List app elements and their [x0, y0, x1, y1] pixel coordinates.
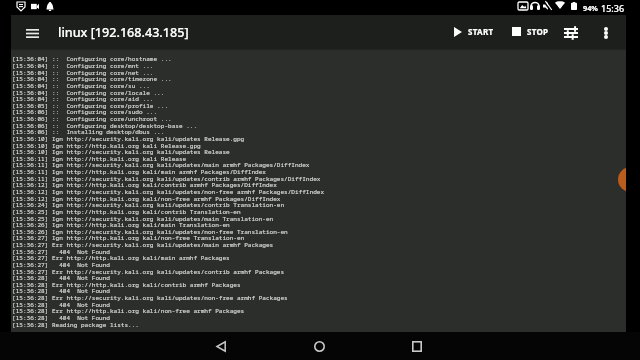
staticText: [15:36:11] Ign http://security.kali.org … [12, 175, 321, 183]
button[interactable]: Back [207, 332, 235, 360]
staticText: [15:36:28] 404 Not Found [12, 274, 110, 282]
staticText: [15:36:26] Ign http://security.kali.org … [12, 228, 288, 236]
staticText: [15:36:11] Ign http://http.kali.org kali… [12, 168, 266, 176]
staticText: [15:36:06] :: Configuring desktop/deskto… [12, 122, 198, 130]
staticText: [15:36:27] Err http://security.kali.org … [12, 268, 285, 276]
button[interactable]: Settings [557, 15, 585, 48]
staticText: [15:36:12] Ign http://http.kali.org kali… [12, 195, 281, 203]
staticText: [15:36:28] 404 Not Found [12, 314, 110, 322]
staticText: [15:36:25] Ign http://security.kali.org … [12, 215, 274, 223]
staticText: [15:36:27] Ign http://http.kali.org kali… [12, 234, 245, 242]
button[interactable]: Show keyboard [618, 167, 640, 192]
staticText: START [468, 26, 494, 37]
staticText: STOP [527, 26, 549, 37]
staticText: [15:36:12] Ign http://http.kali.org kali… [12, 181, 277, 189]
button[interactable]: Menu [18, 15, 47, 48]
staticText: [15:36:04] :: Configuring core/timezone … [12, 75, 172, 83]
staticText: linux [192.168.43.185] [58, 24, 189, 41]
staticText: [15:36:06] :: Configuring core/sudo ... [12, 108, 158, 116]
staticText: [15:36:04] :: Configuring core/aid ... [12, 95, 154, 103]
staticText: [15:36:10] Ign http://http.kali.org kali… [12, 142, 201, 150]
button[interactable]: STOP [506, 15, 555, 48]
staticText: [15:36:25] Ign http://http.kali.org kali… [12, 208, 241, 216]
staticText: [15:36:04] :: Configuring core/locale ..… [12, 89, 165, 97]
staticText: [15:36:10] Ign http://security.kali.org … [12, 135, 245, 143]
staticText: [15:36:05] :: Configuring core/profile .… [12, 102, 169, 110]
staticText: 15:36 [601, 2, 625, 14]
button[interactable]: START [448, 15, 500, 48]
staticText: [15:36:27] 404 Not Found [12, 261, 110, 269]
staticText: 94% [583, 3, 598, 13]
staticText: [15:36:28] Reading package lists... [12, 321, 139, 329]
staticText: [15:36:27] 404 Not Found [12, 248, 110, 256]
staticText: [15:36:28] 404 Not Found [12, 287, 110, 295]
staticText: [15:36:26] Ign http://http.kali.org kali… [12, 221, 230, 229]
staticText: [15:36:10] Ign http://security.kali.org … [12, 148, 230, 156]
staticText: [15:36:12] Ign http://security.kali.org … [12, 188, 325, 196]
staticText: [15:36:04] :: Configuring core/su ... [12, 82, 150, 90]
staticText: [15:36:11] Ign http://http.kali.org kali… [12, 155, 187, 163]
button[interactable]: Home [305, 332, 333, 360]
staticText: [15:36:11] Ign http://security.kali.org … [12, 161, 310, 169]
button[interactable]: More options [592, 15, 620, 48]
staticText: [15:36:24] Ign http://security.kali.org … [12, 201, 285, 209]
button[interactable]: Recents [403, 332, 431, 360]
staticText: [15:36:28] Err http://http.kali.org kali… [12, 307, 245, 315]
staticText: [15:36:28] Err http://security.kali.org … [12, 294, 288, 302]
staticText: [15:36:28] 404 Not Found [12, 301, 110, 309]
staticText: [15:36:04] :: Configuring core/net ... [12, 69, 154, 77]
staticText: [15:36:06] :: Configuring core/unchroot … [12, 115, 172, 123]
staticText: [15:36:27] Err http://http.kali.org kali… [12, 254, 230, 262]
staticText: [15:36:04] :: Configuring core/mnt ... [12, 62, 154, 70]
staticText: [15:36:04] :: Configuring core/hostname … [12, 55, 172, 63]
staticText: [15:36:28] Err http://http.kali.org kali… [12, 281, 241, 289]
staticText: [15:36:06] :: Installing desktop/dbus ..… [12, 128, 165, 136]
staticText: [15:36:27] Err http://security.kali.org … [12, 241, 274, 249]
